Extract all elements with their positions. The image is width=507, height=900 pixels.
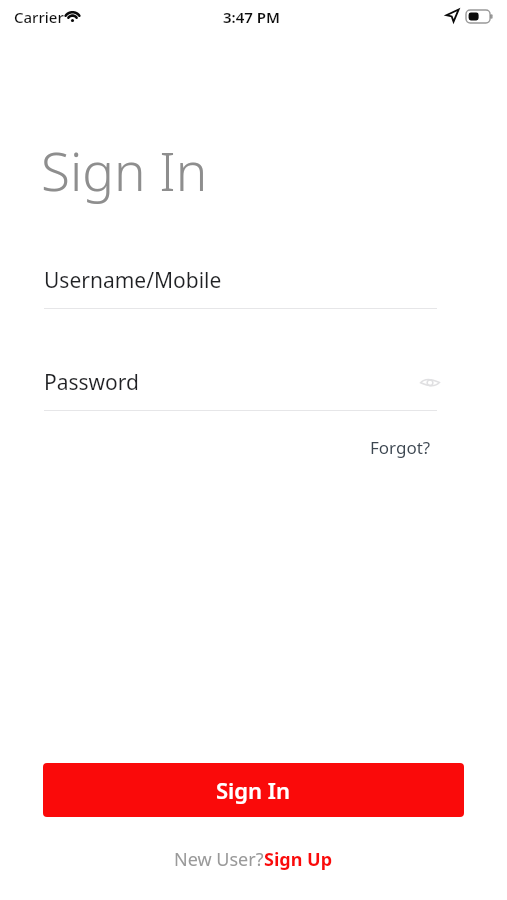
staticText: Sign In xyxy=(41,134,208,206)
button[interactable]: Username/Mobile xyxy=(44,266,437,309)
staticText: Sign In xyxy=(216,775,291,805)
staticText: 3:47 PM xyxy=(223,7,280,27)
staticText: Password xyxy=(44,368,139,397)
button[interactable]: Show password xyxy=(416,368,444,396)
button[interactable]: Sign Up xyxy=(264,847,333,872)
staticText: Sign Up xyxy=(264,847,333,872)
button[interactable]: Password xyxy=(44,368,437,411)
staticText: New User? xyxy=(174,847,264,872)
staticText: Carrier xyxy=(14,7,64,27)
button[interactable]: Forgot? xyxy=(364,433,437,462)
button[interactable]: Sign In xyxy=(43,763,464,817)
staticText: Forgot? xyxy=(370,436,431,459)
staticText: Username/Mobile xyxy=(44,266,222,295)
